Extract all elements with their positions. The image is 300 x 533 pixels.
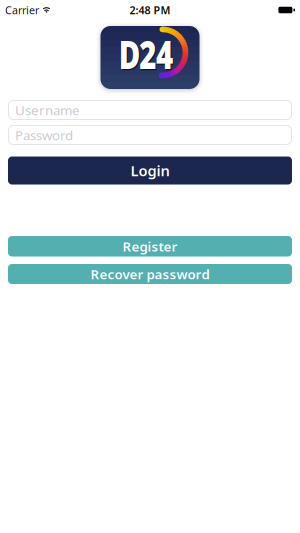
staticText: Username [15, 101, 80, 119]
button[interactable]: Login [8, 156, 292, 184]
staticText: 2:48 PM [129, 3, 170, 17]
staticText: Login [130, 161, 169, 180]
button[interactable]: Register [8, 236, 292, 256]
staticText: Carrier [5, 3, 39, 17]
staticText: D24 [110, 28, 182, 80]
staticText: D24 [111, 29, 183, 81]
staticText: Recover password [90, 265, 209, 283]
staticText: Register [122, 237, 177, 255]
button[interactable]: Recover password [8, 264, 292, 284]
staticText: Password [15, 126, 73, 144]
